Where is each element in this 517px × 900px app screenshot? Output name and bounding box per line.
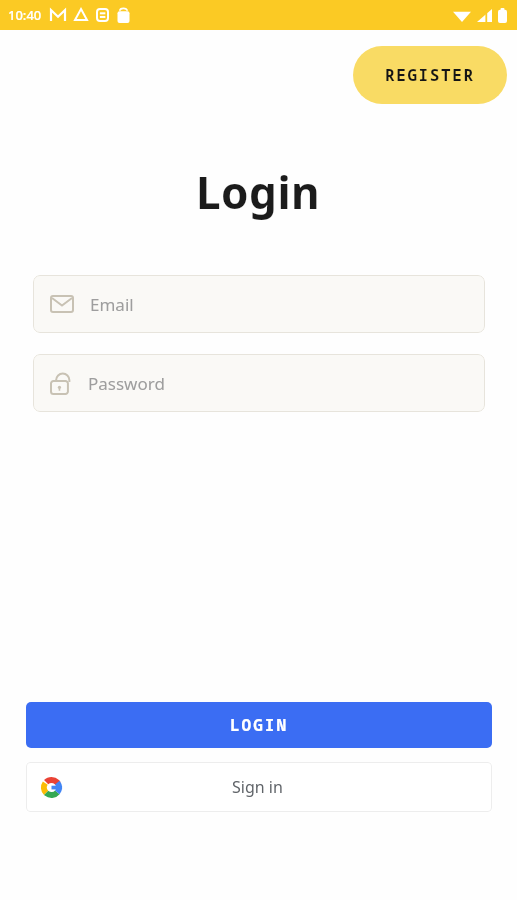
- staticText: Sign in: [232, 776, 283, 798]
- button[interactable]: REGISTER: [353, 46, 507, 104]
- staticText: Password: [88, 372, 165, 395]
- staticText: LOGIN: [230, 714, 289, 736]
- staticText: REGISTER: [385, 64, 475, 86]
- staticText: Login: [196, 162, 321, 222]
- button[interactable]: LOGIN: [26, 702, 492, 748]
- staticText: Email: [90, 293, 134, 316]
- button[interactable]: Sign in: [26, 762, 492, 812]
- staticText: 10:40: [8, 6, 42, 24]
- button[interactable]: Email: [33, 275, 485, 333]
- button[interactable]: Password: [33, 354, 485, 412]
